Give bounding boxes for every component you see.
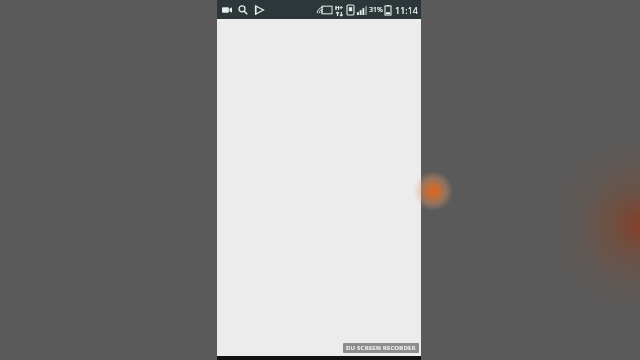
button[interactable]: Screen recorder — [220, 3, 234, 17]
staticText: H+ — [335, 4, 344, 12]
button[interactable]: Search — [236, 3, 250, 17]
button[interactable]: DU SCREEN RECORDER — [346, 344, 416, 352]
staticText: 11:14 — [394, 4, 418, 16]
staticText: DU SCREEN RECORDER — [346, 344, 416, 352]
button[interactable]: Play — [252, 3, 266, 17]
staticText: 31% — [369, 5, 383, 15]
